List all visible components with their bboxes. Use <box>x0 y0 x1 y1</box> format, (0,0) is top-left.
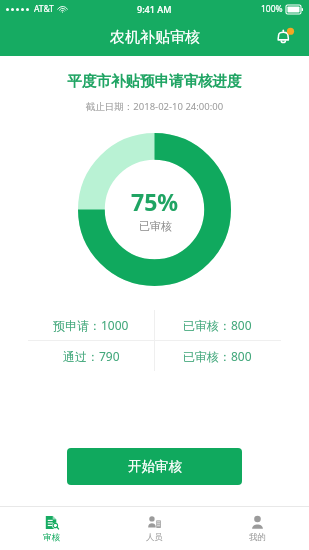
button[interactable]: 预申请：1000 <box>28 310 154 340</box>
button[interactable]: 开始审核 <box>67 448 242 485</box>
staticText: 截止日期：2018-02-10 24:00:00 <box>0 100 309 113</box>
button[interactable]: 已审核：800 <box>154 310 281 340</box>
staticText: AT&T <box>34 3 54 15</box>
button[interactable]: 已审核：800 <box>154 341 281 371</box>
button[interactable]: 通过：790 <box>28 341 154 371</box>
staticText: 已审核：800 <box>183 317 252 333</box>
staticText: 我的 <box>249 532 266 543</box>
staticText: 预申请：1000 <box>53 317 129 333</box>
staticText: 100% <box>261 3 283 15</box>
staticText: 已审核：800 <box>183 348 252 364</box>
staticText: 通过：790 <box>63 348 120 364</box>
button[interactable]: Notifications <box>271 24 297 50</box>
staticText: 开始审核 <box>128 458 182 475</box>
button[interactable]: 审核 <box>0 507 103 550</box>
staticText: 9:41 AM <box>137 3 172 15</box>
staticText: 75% <box>131 186 179 217</box>
staticText: 已审核 <box>139 219 172 233</box>
button[interactable]: 人员 <box>103 507 206 550</box>
button[interactable]: 我的 <box>206 507 309 550</box>
staticText: 人员 <box>146 532 163 543</box>
staticText: 审核 <box>43 532 60 543</box>
staticText: 农机补贴审核 <box>110 28 200 47</box>
staticText: 平度市补贴预申请审核进度 <box>0 72 309 90</box>
